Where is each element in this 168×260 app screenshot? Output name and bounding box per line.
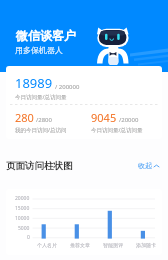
staticText: 今日访问量/总访问量 [15, 93, 67, 101]
staticText: 推荐文章 [70, 242, 90, 248]
staticText: /20000 [119, 116, 139, 124]
staticText: / 200000 [55, 83, 80, 91]
staticText: 添加随卡 [136, 242, 156, 248]
staticText: 页面访问柱状图 [6, 160, 73, 172]
staticText: 280 [15, 110, 34, 125]
staticText: 我的今日访问/总访问 [15, 126, 67, 134]
staticText: 9045 [91, 110, 117, 125]
button[interactable]: 280 [10, 109, 71, 135]
button[interactable]: 18989 [10, 73, 84, 102]
button[interactable]: 9045 [86, 109, 147, 135]
button[interactable]: 收起 [136, 159, 161, 172]
staticText: 15000 [15, 205, 30, 212]
staticText: 用多保机器人 [15, 45, 63, 55]
staticText: 10000 [15, 215, 30, 222]
staticText: 20000 [15, 195, 30, 202]
staticText: 智能测评 [103, 242, 123, 248]
staticText: 微信谈客户 [16, 28, 76, 43]
staticText: 收起 [138, 161, 152, 170]
staticText: 个人名片 [37, 242, 57, 248]
staticText: 18989 [15, 74, 53, 92]
staticText: 0 [27, 234, 30, 241]
staticText: /2800 [36, 116, 52, 124]
staticText: 今日访问量/总访问量 [91, 126, 143, 134]
staticText: 5000 [18, 225, 30, 232]
